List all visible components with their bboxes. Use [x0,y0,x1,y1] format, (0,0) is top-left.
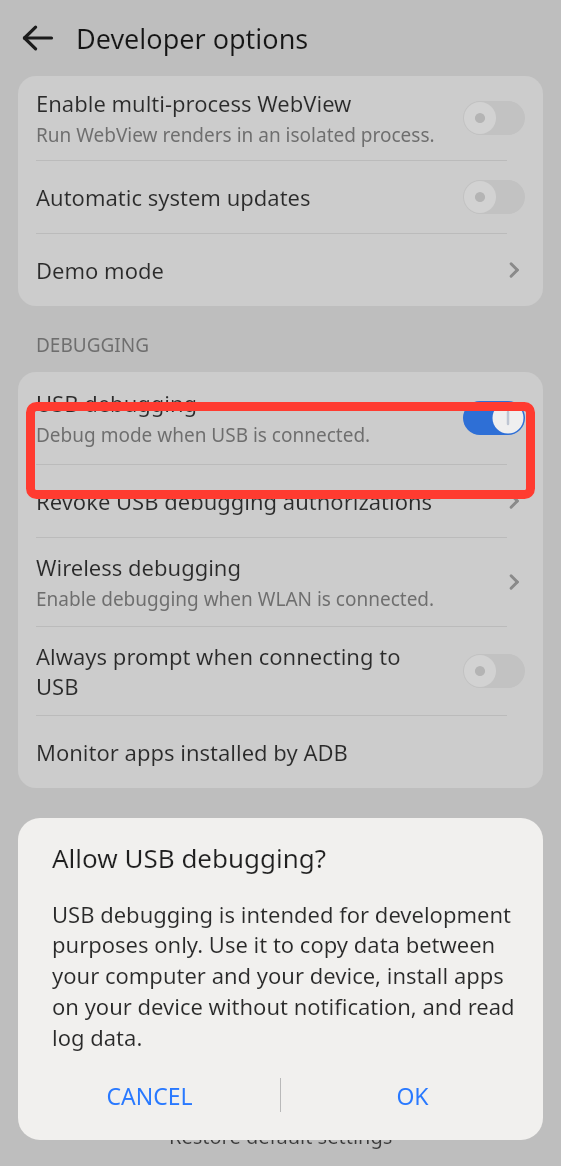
button[interactable]: USB debugging [18,372,543,464]
button[interactable]: Always prompt when connecting to USB [18,627,543,715]
staticText: Wireless debugging [36,552,241,582]
staticText: Debug mode when USB is connected. [36,422,371,448]
staticText: Always prompt when connecting to USB [36,641,403,701]
staticText: Monitor apps installed by ADB [36,737,348,767]
staticText: OK [396,1080,429,1111]
button[interactable]: OK [281,1056,543,1134]
button[interactable]: Automatic system updates [18,161,543,233]
staticText: CANCEL [106,1080,193,1111]
staticText: Developer options [76,20,309,57]
staticText: Enable debugging when WLAN is connected. [36,586,435,612]
staticText: Allow USB debugging? [52,840,327,875]
button[interactable]: Demo mode [18,234,543,306]
staticText: Enable multi-process WebView [36,88,352,118]
staticText: USB debugging [36,388,198,418]
button[interactable]: Enable multi-process WebView [18,76,543,160]
staticText: USB debugging is intended for developmen… [52,899,517,1053]
staticText: Run WebView renders in an isolated proce… [36,122,435,148]
button[interactable]: Revoke USB debugging authorizations [18,465,543,537]
button[interactable]: CANCEL [18,1056,280,1134]
staticText: Revoke USB debugging authorizations [36,486,433,516]
staticText: Restore default settings [169,1123,393,1150]
button[interactable]: Back [0,0,76,76]
staticText: Demo mode [36,255,164,285]
staticText: DEBUGGING [36,332,150,358]
button[interactable]: Monitor apps installed by ADB [18,716,543,788]
button[interactable]: Wireless debugging [18,538,543,626]
staticText: Automatic system updates [36,182,311,212]
